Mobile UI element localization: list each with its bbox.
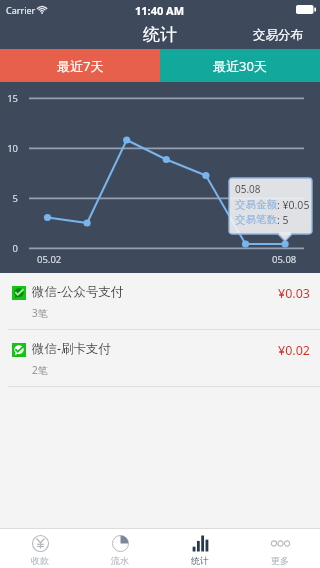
button[interactable]: 流水	[80, 529, 160, 568]
staticText: : 5	[277, 213, 289, 227]
staticText: 更多	[271, 555, 289, 566]
staticText: 15	[0, 92, 18, 105]
staticText: 微信-公众号支付	[32, 283, 124, 300]
staticText: 微信-刷卡支付	[32, 340, 112, 357]
staticText: 2笔	[32, 363, 48, 377]
button[interactable]: 收款	[0, 529, 80, 568]
staticText: 交易分布	[253, 27, 303, 43]
staticText: 最近7天	[57, 57, 104, 75]
staticText: 05.08	[272, 253, 297, 266]
staticText: 统计	[143, 24, 177, 45]
staticText: 统计	[191, 555, 209, 566]
staticText: 05.02	[37, 253, 62, 266]
staticText: ¥0.02	[278, 342, 310, 359]
staticText: ¥0.03	[278, 285, 310, 302]
staticText: Carrier	[6, 4, 36, 16]
staticText: 11:40 AM	[135, 3, 185, 18]
staticText: 收款	[31, 555, 49, 566]
staticText: 交易金额	[235, 198, 277, 211]
staticText: 05.08	[235, 182, 261, 196]
staticText: 10	[0, 142, 18, 155]
button[interactable]: 交易分布	[243, 23, 320, 47]
staticText: 0	[0, 242, 18, 255]
staticText: 流水	[111, 555, 129, 566]
button[interactable]: 最近7天	[0, 49, 160, 82]
staticText: 最近30天	[213, 57, 267, 75]
button[interactable]: 统计	[160, 529, 240, 568]
staticText: 3笔	[32, 306, 48, 320]
staticText: 交易笔数	[235, 213, 277, 226]
button[interactable]: 微信-公众号支付	[0, 273, 320, 329]
button[interactable]: 最近30天	[160, 49, 320, 82]
button[interactable]: 微信-刷卡支付	[0, 330, 320, 386]
staticText: : ¥0.05	[277, 198, 310, 212]
button[interactable]: 更多	[240, 529, 320, 568]
staticText: 5	[0, 192, 18, 205]
